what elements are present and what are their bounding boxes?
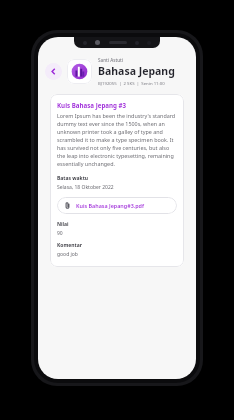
button[interactable]: Attachment xyxy=(57,197,177,214)
staticText: Komentar xyxy=(57,242,82,249)
staticText: Nilai xyxy=(57,221,69,228)
staticText: 90 xyxy=(57,230,63,237)
staticText: Lorem Ipsum has been the industry's stan… xyxy=(57,112,177,168)
staticText: BJ192055 | 2 SKS | Senin 11:00 xyxy=(98,80,165,86)
staticText: Kuis Bahasa Jepang #3 xyxy=(57,101,127,109)
staticText: Santi Astuti xyxy=(98,57,124,63)
other: Attachment xyxy=(64,202,71,209)
staticText: Batas waktu xyxy=(57,175,89,182)
button[interactable]: Course icon xyxy=(67,59,92,84)
staticText: Bahasa Jepang xyxy=(98,64,175,78)
button[interactable]: Kuis Bahasa Jepang #3 xyxy=(50,94,184,267)
staticText: Kuis Bahasa Jepang#3.pdf xyxy=(76,202,144,209)
staticText: good job xyxy=(57,251,78,258)
button[interactable]: Back xyxy=(45,63,62,80)
staticText: Selasa, 18 Oktober 2022 xyxy=(57,184,114,191)
